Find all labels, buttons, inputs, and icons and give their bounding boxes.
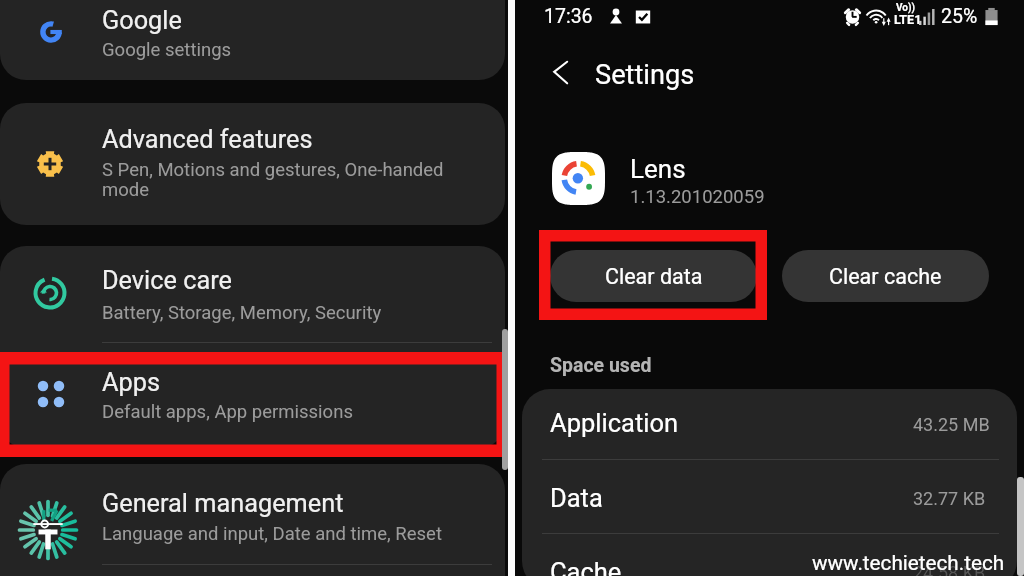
staticText: Cache [550,557,622,576]
button[interactable] [0,103,505,225]
staticText: 17:36 [544,5,593,28]
staticText: Default apps, App permissions [102,401,353,423]
staticText: 32.77 KB [913,488,986,509]
staticText: Advanced features [102,125,313,155]
staticText: www.techietech.tech [812,551,1005,575]
staticText: S Pen, Motions and gestures, One-handed … [102,159,502,201]
staticText: Battery, Storage, Memory, Security [102,302,382,324]
button[interactable]: Clear data [550,250,757,302]
staticText: Clear data [605,264,703,289]
staticText: 24.58 KB [913,562,986,576]
staticText: Lens [630,154,686,184]
staticText: 25% [941,5,978,28]
staticText: Vo)) [896,2,915,14]
button[interactable]: Clear data highlight [539,230,767,320]
staticText: Google [102,6,182,36]
staticText: Application [550,408,679,438]
staticText: LTE1 [894,12,922,27]
button[interactable] [0,464,505,576]
button[interactable] [0,0,505,80]
button[interactable]: Back [539,49,583,93]
staticText: Settings [595,59,695,91]
button[interactable] [0,246,505,448]
staticText: Device care [102,266,232,296]
staticText: Language and input, Date and time, Reset [102,523,442,545]
staticText: Clear cache [829,264,942,289]
button[interactable]: Apps highlight [0,352,509,457]
staticText: General management [102,489,344,519]
staticText: Apps [102,368,160,398]
staticText: Space used [550,354,652,377]
staticText: 1.13.201020059 [630,186,765,208]
staticText: Data [550,483,603,513]
button[interactable]: Clear cache [782,250,989,302]
staticText: 43.25 MB [913,414,990,435]
staticText: Google settings [102,39,232,61]
